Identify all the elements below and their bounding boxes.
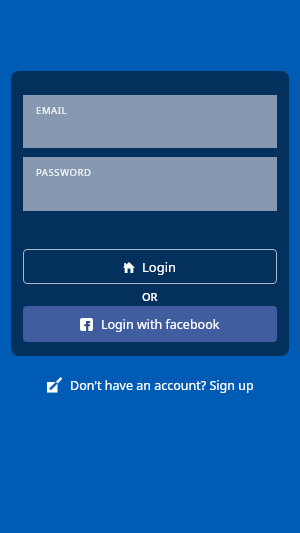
staticText: Login (142, 258, 177, 276)
staticText: EMAIL (36, 104, 68, 117)
button[interactable]: Login (23, 249, 277, 284)
staticText: Don't have an account? Sign up (70, 377, 254, 394)
staticText: Login with facebook (101, 316, 220, 333)
button[interactable]: EMAIL (23, 95, 277, 148)
button[interactable]: Login with facebook (23, 306, 277, 342)
staticText: PASSWORD (36, 166, 92, 179)
staticText: OR (142, 289, 158, 304)
button[interactable]: PASSWORD (23, 157, 277, 211)
button[interactable]: Don't have an account? Sign up (47, 377, 254, 394)
